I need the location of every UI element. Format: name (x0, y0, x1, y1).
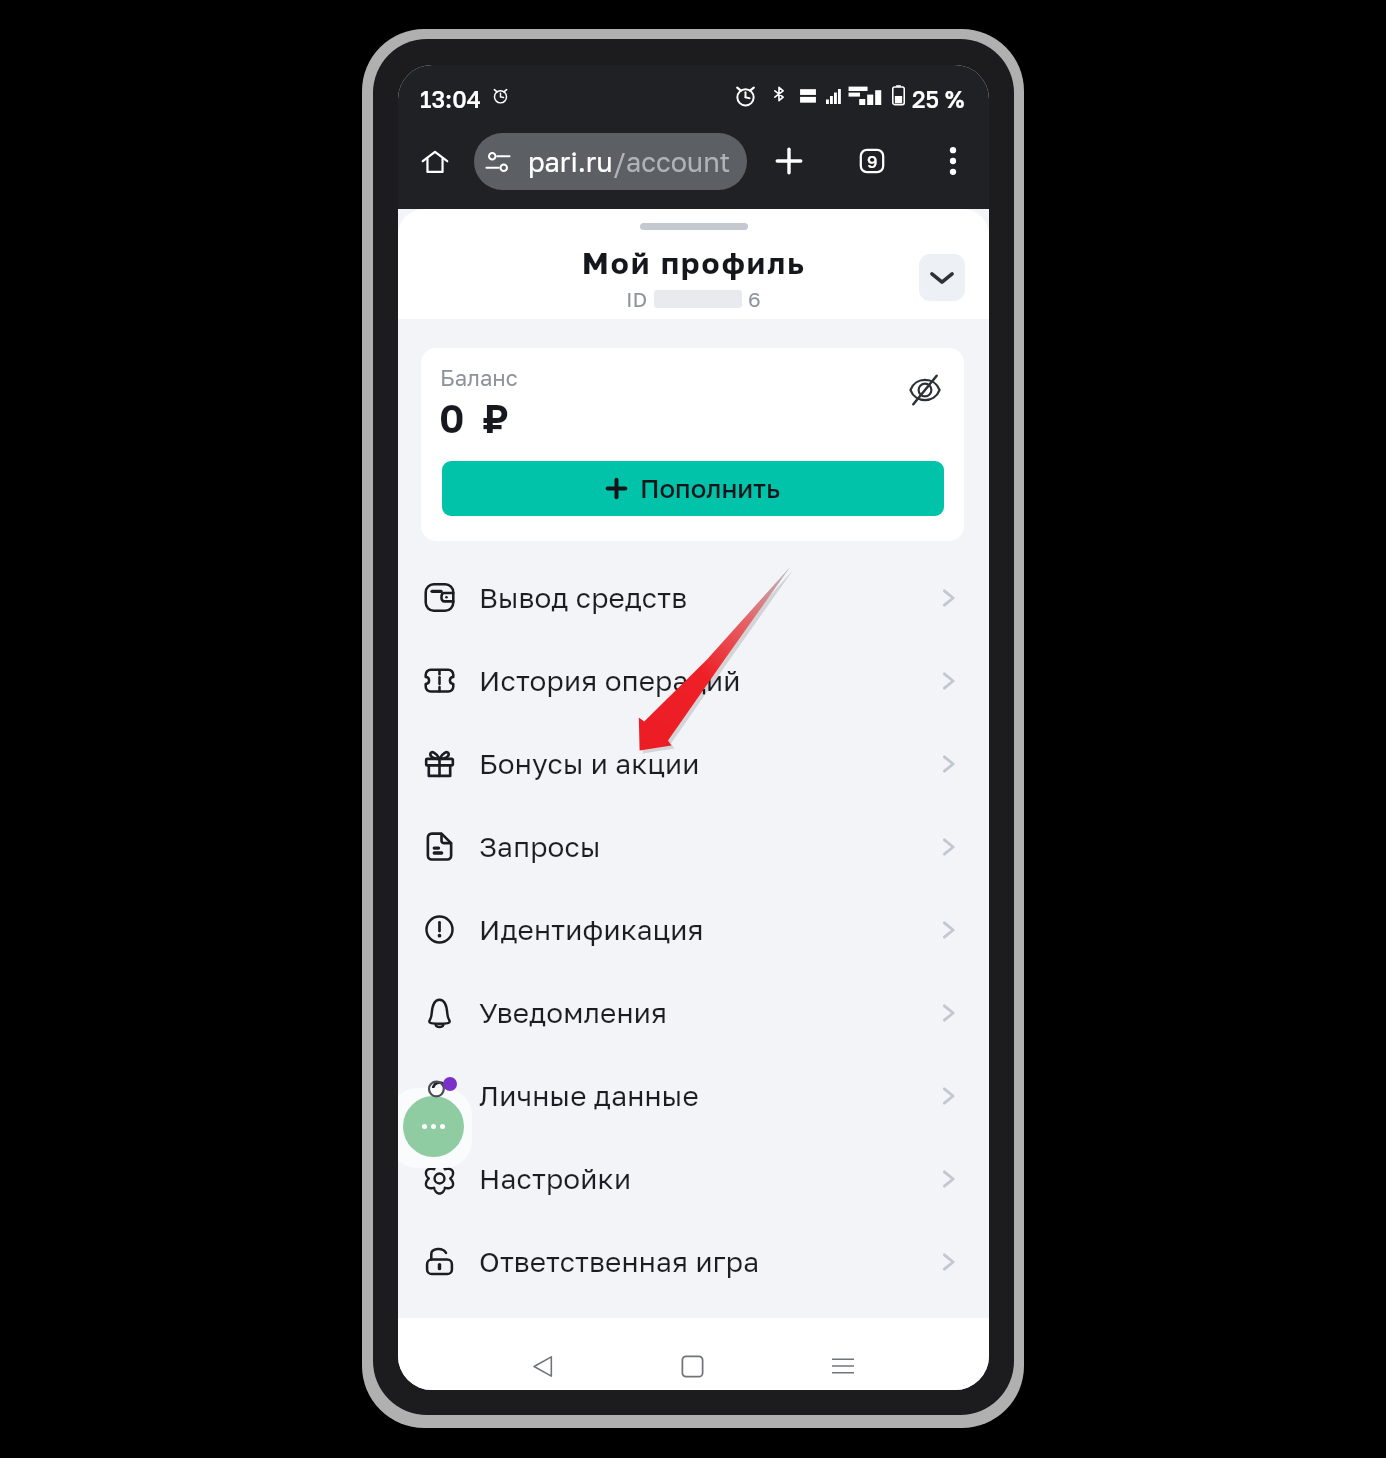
staticText: Идентификация (479, 913, 704, 947)
button[interactable]: История операций (398, 639, 989, 722)
button[interactable]: Hide balance (907, 372, 943, 408)
staticText: 9 (867, 151, 878, 171)
button[interactable]: Идентификация (398, 888, 989, 971)
staticText: 6 (748, 286, 761, 311)
button[interactable]: Collapse (919, 254, 965, 301)
staticText: 13:04 (420, 85, 481, 113)
button[interactable]: Back (518, 1342, 566, 1390)
button[interactable]: More options (930, 138, 975, 183)
staticText: Баланс (440, 364, 518, 390)
button[interactable]: Вывод средств (398, 556, 989, 639)
staticText: Бонусы и акции (479, 747, 700, 781)
button[interactable]: pari.ru (474, 133, 747, 190)
staticText: Мой профиль (582, 245, 806, 281)
staticText: Личные данные (479, 1079, 699, 1113)
button[interactable]: Recent apps (819, 1342, 867, 1390)
button[interactable]: Home (413, 139, 459, 185)
button[interactable]: Запросы (398, 805, 989, 888)
staticText: pari.ru (528, 146, 613, 178)
staticText: /account (613, 146, 731, 178)
button[interactable]: Настройки (398, 1137, 989, 1220)
button[interactable]: Пополнить (442, 461, 944, 516)
button[interactable]: Tabs (849, 138, 895, 184)
staticText: 0 ₽ (439, 394, 513, 442)
button[interactable]: Бонусы и акции (398, 722, 989, 805)
staticText: Вывод средств (479, 581, 688, 615)
staticText: Запросы (479, 830, 601, 864)
staticText: Пополнить (640, 473, 781, 504)
staticText: Уведомления (479, 996, 668, 1030)
button[interactable]: Home (669, 1342, 717, 1390)
staticText: Ответственная игра (479, 1245, 760, 1279)
button[interactable]: Support chat (403, 1096, 464, 1157)
staticText: 25 % (912, 85, 965, 113)
button[interactable]: Личные данные (398, 1054, 989, 1137)
button[interactable]: Уведомления (398, 971, 989, 1054)
staticText: История операций (479, 664, 741, 698)
staticText: Настройки (479, 1162, 632, 1196)
button[interactable]: Ответственная игра (398, 1220, 989, 1303)
staticText: ID (626, 286, 648, 311)
button[interactable]: New tab (766, 138, 812, 184)
